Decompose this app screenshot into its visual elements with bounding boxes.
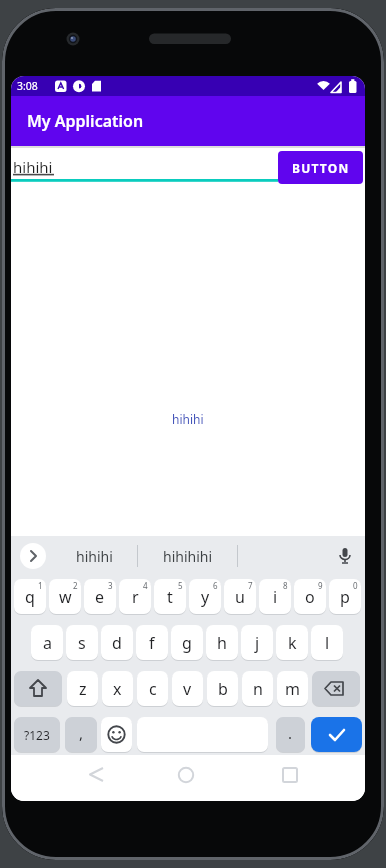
button[interactable]: .	[276, 717, 305, 752]
button[interactable]: v	[172, 671, 203, 706]
staticText: 6	[213, 580, 218, 591]
button[interactable]: i	[259, 579, 291, 614]
staticText: 5	[178, 580, 183, 591]
staticText: BUTTON	[292, 160, 350, 176]
button[interactable]	[270, 755, 310, 795]
staticText: z	[79, 678, 87, 700]
button[interactable]: j	[241, 625, 273, 660]
button[interactable]: t	[154, 579, 186, 614]
staticText: y	[201, 586, 210, 608]
button[interactable]	[11, 148, 278, 184]
staticText: u	[235, 586, 245, 608]
staticText: 4	[143, 580, 148, 591]
staticText: .	[288, 723, 293, 743]
button[interactable]: g	[171, 625, 203, 660]
staticText: hihihi	[13, 157, 53, 177]
staticText: l	[325, 632, 330, 654]
staticText: ,	[79, 723, 84, 743]
button[interactable]	[311, 717, 362, 752]
staticText: t	[167, 586, 173, 608]
button[interactable]: z	[67, 671, 98, 706]
button[interactable]: h	[206, 625, 238, 660]
staticText: r	[132, 586, 139, 608]
button[interactable]: d	[101, 625, 133, 660]
staticText: s	[78, 632, 86, 654]
staticText: a	[43, 632, 52, 654]
button[interactable]: u	[224, 579, 256, 614]
button[interactable]: b	[207, 671, 238, 706]
staticText: g	[182, 632, 192, 654]
button[interactable]	[77, 755, 117, 795]
button[interactable]: s	[66, 625, 98, 660]
staticText: w	[59, 586, 72, 608]
button[interactable]: y	[189, 579, 221, 614]
button[interactable]: f	[136, 625, 168, 660]
staticText: o	[305, 586, 315, 608]
button[interactable]: hihihi	[51, 543, 137, 569]
staticText: 9	[318, 580, 323, 591]
staticText: ?123	[24, 727, 50, 743]
button[interactable]: m	[277, 671, 308, 706]
button[interactable]: c	[137, 671, 168, 706]
button[interactable]	[166, 755, 206, 795]
staticText: hihihi	[76, 547, 113, 566]
button[interactable]: a	[31, 625, 63, 660]
staticText: h	[217, 632, 227, 654]
staticText: 2	[73, 580, 78, 591]
button[interactable]	[101, 717, 132, 752]
button[interactable]	[312, 671, 360, 706]
button[interactable]: BUTTON	[278, 151, 363, 184]
staticText: c	[149, 678, 157, 700]
button[interactable]: q	[14, 579, 46, 614]
staticText: k	[288, 632, 297, 654]
staticText: 3:08	[17, 79, 38, 93]
staticText: f	[149, 632, 155, 654]
staticText: i	[273, 586, 278, 608]
staticText: q	[25, 586, 35, 608]
staticText: 1	[38, 580, 43, 591]
staticText: n	[253, 678, 263, 700]
staticText: 8	[283, 580, 288, 591]
staticText: d	[112, 632, 122, 654]
staticText: j	[255, 632, 260, 654]
staticText: v	[183, 678, 192, 700]
button[interactable]: x	[102, 671, 133, 706]
staticText: e	[95, 586, 105, 608]
button[interactable]: o	[294, 579, 326, 614]
button[interactable]: p	[329, 579, 361, 614]
button[interactable]: n	[242, 671, 273, 706]
button[interactable]: r	[119, 579, 151, 614]
button[interactable]	[337, 548, 353, 564]
staticText: hihihihi	[163, 547, 213, 566]
staticText: m	[285, 678, 300, 700]
button[interactable]	[14, 671, 62, 706]
staticText: hihihi	[172, 411, 204, 427]
button[interactable]: k	[276, 625, 308, 660]
staticText: p	[340, 586, 350, 608]
staticText: x	[113, 678, 122, 700]
staticText: 0	[353, 580, 358, 591]
staticText: b	[218, 678, 228, 700]
staticText: 7	[248, 580, 253, 591]
button[interactable]: ?123	[14, 717, 60, 752]
button[interactable]: l	[311, 625, 343, 660]
button[interactable]	[20, 543, 46, 569]
button[interactable]: hihihihi	[138, 543, 237, 569]
button[interactable]: ,	[65, 717, 97, 752]
staticText: My Application	[27, 110, 144, 132]
staticText: 3	[108, 580, 113, 591]
button[interactable]: e	[84, 579, 116, 614]
button[interactable]: w	[49, 579, 81, 614]
